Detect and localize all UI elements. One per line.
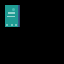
button[interactable]: Home [5, 24, 9, 26]
button[interactable]: Search [10, 24, 14, 26]
button[interactable]: Logo [12, 8, 15, 11]
button[interactable]: Profile [14, 24, 18, 26]
